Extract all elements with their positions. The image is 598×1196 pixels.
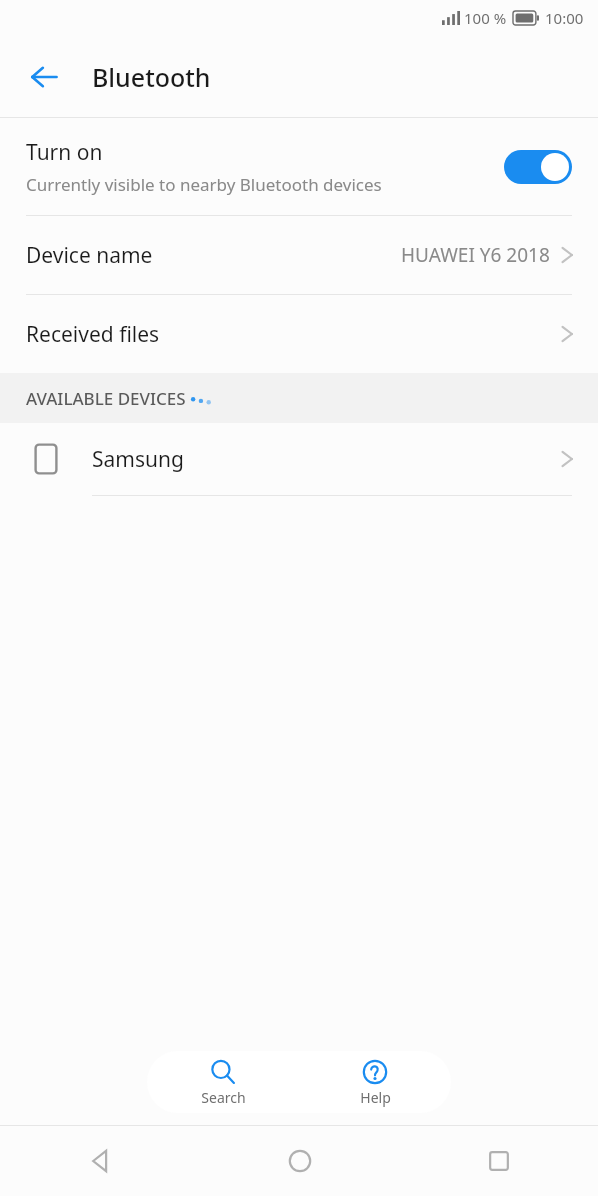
button[interactable]: Back <box>20 53 68 101</box>
staticText: Help <box>360 1088 391 1107</box>
button[interactable]: Help <box>299 1051 451 1113</box>
button[interactable]: Recents <box>399 1126 598 1196</box>
staticText: Bluetooth <box>92 60 211 94</box>
button[interactable]: Bluetooth toggle <box>504 150 572 184</box>
button[interactable]: Turn on <box>0 118 598 215</box>
staticText: Currently visible to nearby Bluetooth de… <box>26 173 382 196</box>
staticText: Search <box>201 1088 246 1107</box>
staticText: HUAWEI Y6 2018 <box>401 242 550 268</box>
staticText: 100 % <box>464 8 507 28</box>
staticText: Device name <box>26 241 401 270</box>
button[interactable]: Home <box>200 1126 399 1196</box>
button[interactable]: Received files <box>0 295 598 373</box>
staticText: AVAILABLE DEVICES <box>26 387 186 410</box>
button[interactable]: Device name <box>0 216 598 294</box>
button[interactable]: Search <box>147 1051 299 1113</box>
staticText: Turn on <box>26 138 103 167</box>
staticText: 10:00 <box>545 8 584 28</box>
staticText: Received files <box>26 320 560 349</box>
button[interactable]: Back <box>0 1126 200 1196</box>
staticText: Samsung <box>92 445 560 474</box>
button[interactable]: Samsung <box>0 423 598 495</box>
